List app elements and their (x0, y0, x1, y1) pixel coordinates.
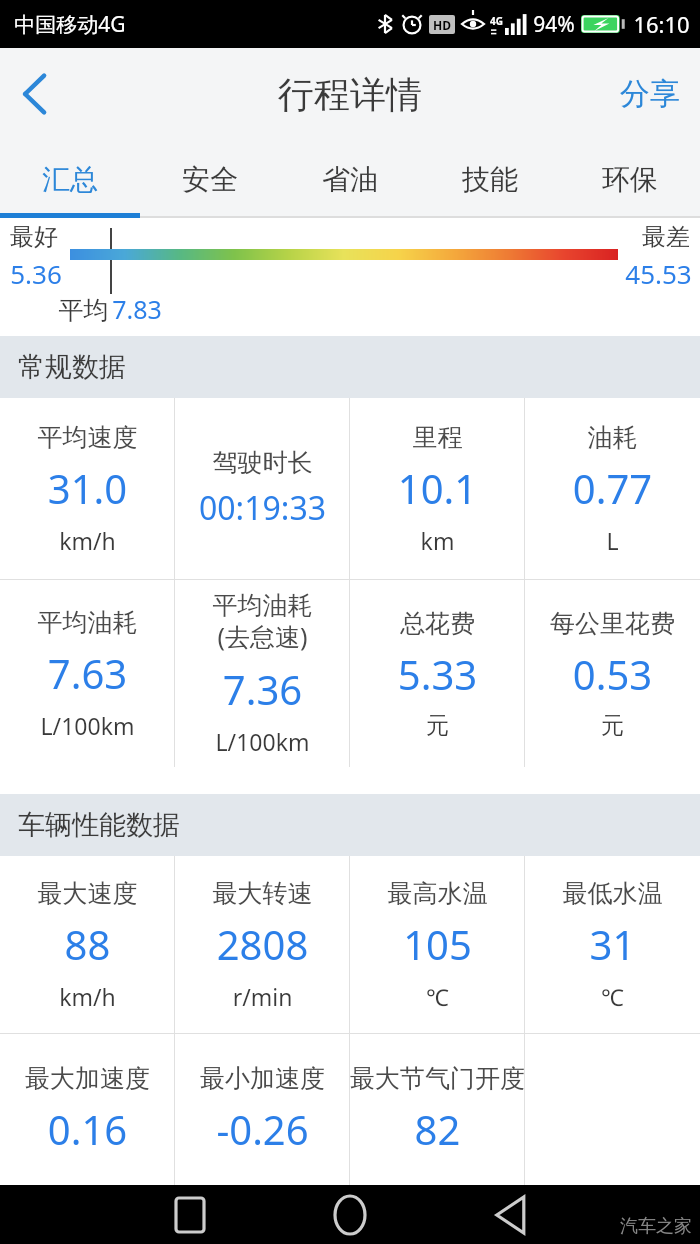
staticText: 最低水温 (525, 878, 700, 909)
staticText: 汽车之家 (620, 1215, 692, 1238)
button[interactable]: 平均油耗 (0, 580, 175, 767)
button[interactable]: 最大加速度 (0, 1034, 175, 1185)
button[interactable]: Back (0, 59, 70, 129)
staticText: 技能 (462, 162, 518, 197)
staticText: 最大转速 (175, 878, 350, 909)
button[interactable]: 技能 (420, 140, 560, 218)
button[interactable]: Back (480, 1185, 540, 1244)
staticText: 88 (0, 917, 175, 971)
staticText: 最好 (10, 222, 58, 252)
button[interactable]: Recents (160, 1185, 220, 1244)
button[interactable]: 平均速度 (0, 398, 175, 579)
staticText: 环保 (602, 162, 658, 197)
button[interactable]: 每公里花费 (525, 580, 700, 767)
staticText: 0.53 (525, 647, 700, 701)
staticText: 驾驶时长 (175, 447, 350, 478)
staticText: 平均速度 (0, 422, 175, 453)
staticText: 94% (533, 10, 575, 39)
staticText: L (525, 525, 700, 556)
staticText: 最大加速度 (0, 1063, 175, 1094)
button[interactable]: 平均油耗 (去怠速) (175, 580, 350, 767)
staticText: HD (433, 17, 451, 33)
button[interactable]: 分享 (620, 75, 680, 113)
staticText: 105 (350, 917, 525, 971)
staticText: 0.16 (0, 1102, 175, 1156)
staticText: 平均油耗 (0, 607, 175, 638)
button[interactable]: 最大节气门开度 (350, 1034, 525, 1185)
staticText: L/100km (0, 710, 175, 741)
button[interactable]: 最大转速 (175, 856, 350, 1033)
staticText: 元 (350, 711, 525, 740)
button[interactable]: 油耗 (525, 398, 700, 579)
button[interactable]: 驾驶时长 (175, 398, 350, 579)
staticText: 4G (490, 14, 503, 28)
button[interactable]: 最大速度 (0, 856, 175, 1033)
button[interactable]: 最小加速度 (175, 1034, 350, 1185)
staticText: 分享 (620, 75, 680, 113)
staticText: 0.77 (525, 461, 700, 515)
staticText: 平均油耗 (去怠速) (175, 590, 350, 654)
staticText: 汇总 (42, 162, 98, 197)
button[interactable]: 里程 (350, 398, 525, 579)
staticText: 每公里花费 (525, 608, 700, 639)
button[interactable]: Home (320, 1185, 380, 1244)
staticText: 31.0 (0, 461, 175, 515)
button[interactable]: 环保 (560, 140, 700, 218)
staticText: 最高水温 (350, 878, 525, 909)
staticText: 7.63 (0, 646, 175, 700)
button[interactable]: 最低水温 (525, 856, 700, 1033)
staticText: 常规数据 (18, 350, 126, 384)
staticText: 10.1 (350, 461, 525, 515)
staticText: 安全 (182, 162, 238, 197)
staticText: 最大速度 (0, 878, 175, 909)
button[interactable]: 最高水温 (350, 856, 525, 1033)
button[interactable]: 汇总 (0, 140, 140, 218)
button[interactable]: 安全 (140, 140, 280, 218)
staticText: 省油 (322, 162, 378, 197)
staticText: 最小加速度 (175, 1063, 350, 1094)
staticText: km/h (0, 525, 175, 556)
staticText: 里程 (350, 422, 525, 453)
staticText: 中国移动4G (14, 10, 126, 39)
staticText: 元 (525, 711, 700, 740)
staticText: 油耗 (525, 422, 700, 453)
staticText: 5.36 (10, 256, 62, 291)
staticText: 平均 (55, 292, 112, 322)
button[interactable]: 省油 (280, 140, 420, 218)
staticText: 最差 (642, 222, 690, 252)
staticText: ℃ (350, 981, 525, 1012)
staticText: 7.83 (112, 292, 162, 322)
staticText: 16:10 (633, 9, 690, 39)
staticText: 总花费 (350, 608, 525, 639)
staticText: -0.26 (175, 1102, 350, 1156)
staticText: L/100km (175, 726, 350, 757)
staticText: 2808 (175, 917, 350, 971)
staticText: ℃ (525, 981, 700, 1012)
button[interactable]: 总花费 (350, 580, 525, 767)
staticText: km (350, 525, 525, 556)
staticText: 45.53 (625, 256, 692, 291)
staticText: 车辆性能数据 (18, 808, 180, 842)
staticText: 7.36 (175, 662, 350, 716)
staticText: 最大节气门开度 (350, 1063, 525, 1094)
staticText: 5.33 (350, 647, 525, 701)
staticText: 行程详情 (278, 72, 422, 117)
staticText: km/h (0, 981, 175, 1012)
staticText: 00:19:33 (175, 486, 350, 530)
staticText: 31 (525, 917, 700, 971)
staticText: r/min (175, 981, 350, 1012)
staticText: 82 (350, 1102, 525, 1156)
